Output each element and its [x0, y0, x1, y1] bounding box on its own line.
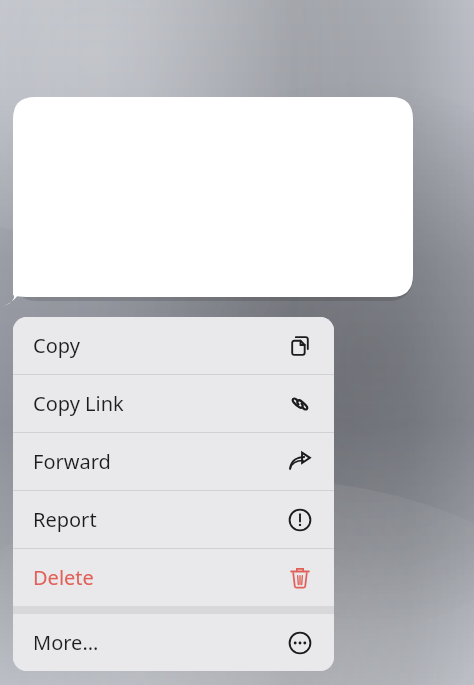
staticText: More...: [33, 629, 99, 656]
staticText: Forward: [33, 448, 111, 475]
button[interactable]: Forward: [13, 433, 334, 490]
staticText: Report: [33, 506, 97, 533]
staticText: Copy Link: [33, 390, 124, 417]
button[interactable]: Delete: [13, 549, 334, 606]
button[interactable]: Report: [13, 491, 334, 548]
button[interactable]: Copy: [13, 317, 334, 374]
button[interactable]: Copy Link: [13, 375, 334, 432]
staticText: Delete: [33, 564, 94, 591]
button[interactable]: More...: [13, 614, 334, 671]
staticText: Copy: [33, 332, 80, 359]
